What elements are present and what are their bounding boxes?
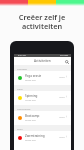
staticText: 4G 100% [60,54,69,57]
button[interactable]: Search [64,59,69,64]
staticText: Aanstaande [17,107,31,110]
staticText: Activiteiten [34,59,51,63]
button[interactable]: Zwemtraining [14,131,71,145]
staticText: Later [17,87,23,90]
button[interactable]: Bootcamp [14,111,71,125]
staticText: Soon [17,127,23,130]
staticText: Spinning [25,94,38,98]
staticText: 18:30 uur [25,98,36,101]
staticText: meer [59,135,65,138]
staticText: meer [59,115,65,118]
staticText: Yoga sessie [25,74,42,78]
staticText: Zwemtraining [25,134,45,138]
staticText: Creëer zelf je activiteiten [0,12,84,31]
staticText: Bootcamp [25,114,40,118]
button[interactable]: Spinning [14,91,71,105]
button[interactable]: Yoga sessie [14,71,71,85]
staticText: Vandaag [17,67,27,70]
staticText: 07:00 uur [25,118,36,121]
staticText: meer [59,95,65,98]
staticText: 9:41 AM [18,54,26,57]
staticText: 09:00 uur [25,78,36,81]
staticText: 20:00 uur [25,138,36,141]
staticText: meer [59,75,65,78]
